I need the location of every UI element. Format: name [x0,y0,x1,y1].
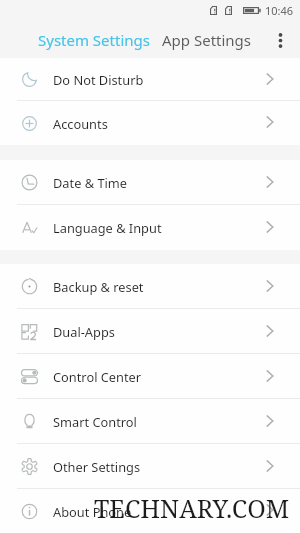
staticText: About Phone [53,503,132,520]
staticText: TECHNARY.COM [94,491,290,525]
staticText: Dual-Apps [53,323,115,340]
staticText: Do Not Disturb [53,71,144,88]
staticText: Date & Time [53,174,127,191]
staticText: Language & Input [53,219,162,236]
button[interactable]: App Settings [156,24,258,56]
staticText: 10:46 [265,3,294,18]
staticText: System Settings [38,30,150,50]
button[interactable]: Other Settings [0,444,300,489]
staticText: Control Center [53,368,142,385]
staticText: App Settings [162,30,252,50]
button[interactable]: Language & Input [0,205,300,250]
button[interactable]: Dual-Apps [0,309,300,354]
button[interactable]: Control Center [0,354,300,399]
staticText: Smart Control [53,413,137,430]
button[interactable]: Date & Time [0,160,300,205]
button[interactable]: More options [265,25,295,55]
button[interactable]: Backup & reset [0,264,300,309]
button[interactable]: About Phone [0,489,300,533]
staticText: Accounts [53,115,108,132]
button[interactable]: Do Not Disturb [0,58,300,101]
staticText: Other Settings [53,458,141,475]
button[interactable]: Smart Control [0,399,300,444]
staticText: Backup & reset [53,278,144,295]
button[interactable]: Accounts [0,101,300,145]
button[interactable]: System Settings [32,24,156,56]
